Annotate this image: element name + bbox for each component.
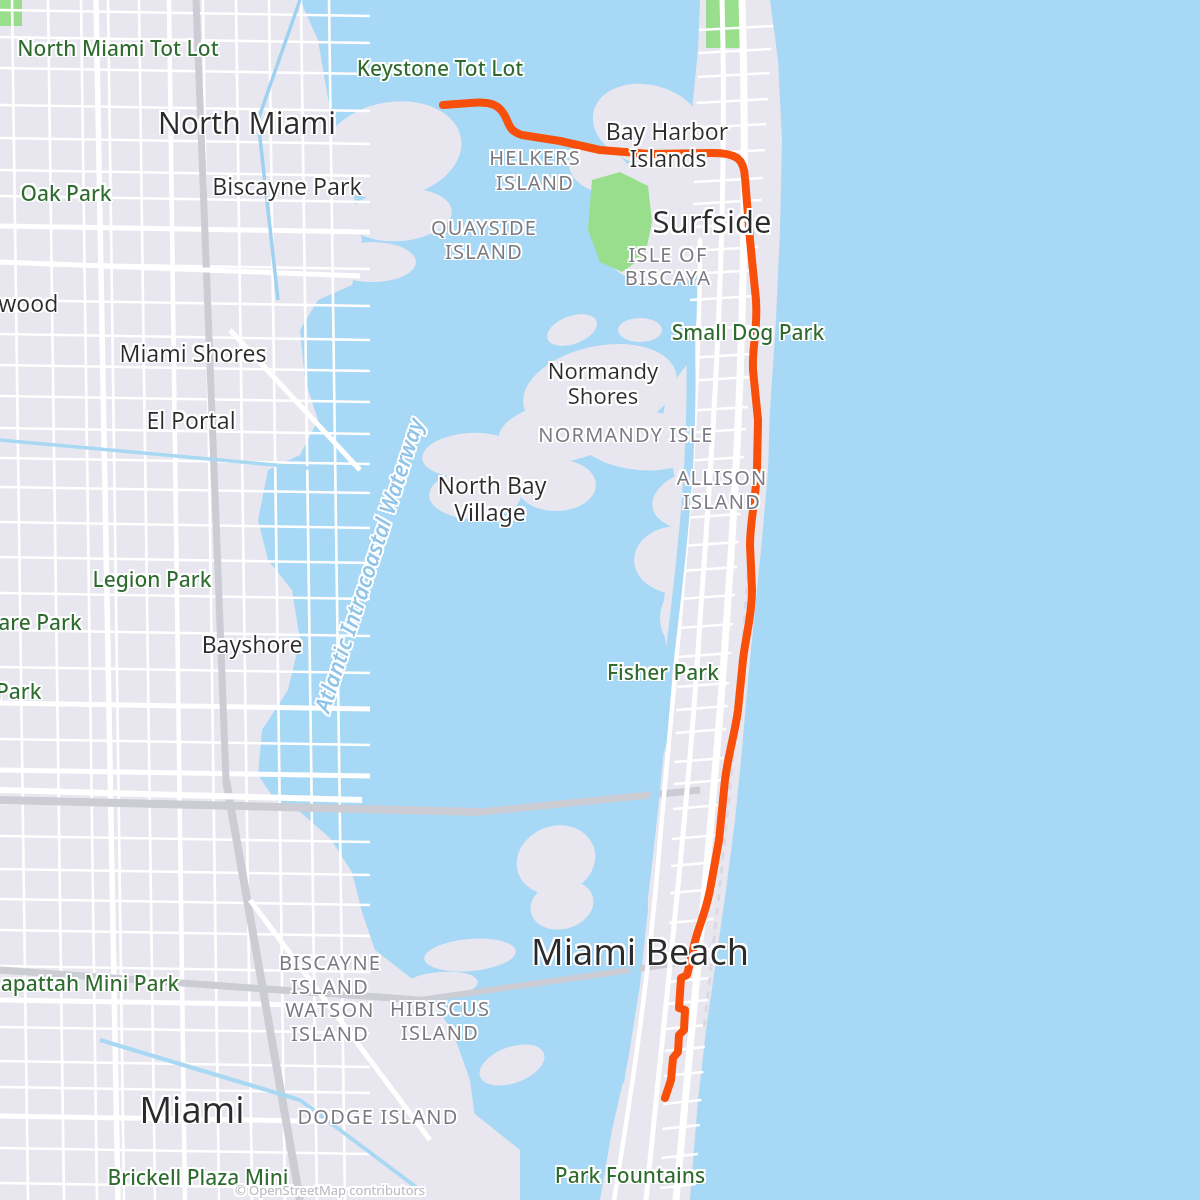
button[interactable]: Activity route map, Miami Beach [0,0,1200,1200]
